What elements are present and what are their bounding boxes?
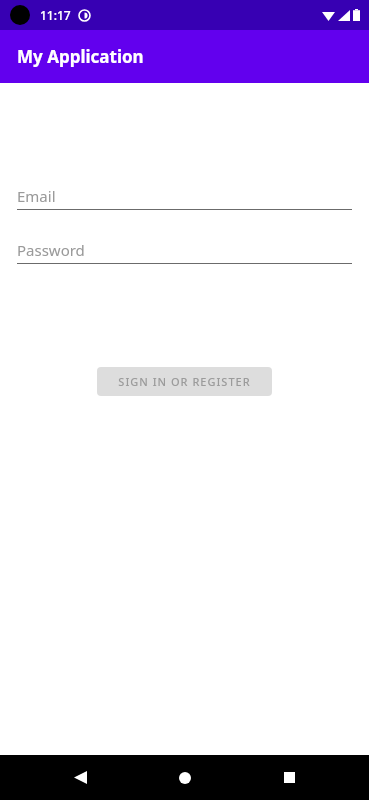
button[interactable]: SIGN IN OR REGISTER: [97, 367, 272, 396]
button[interactable]: Password: [17, 239, 352, 264]
button[interactable]: Email: [17, 185, 352, 210]
button[interactable]: Recent apps: [265, 755, 313, 800]
staticText: My Application: [17, 45, 144, 68]
button[interactable]: Home: [161, 755, 209, 800]
staticText: Password: [17, 240, 85, 260]
staticText: 11:17: [40, 7, 71, 23]
button[interactable]: Back: [56, 755, 104, 800]
staticText: SIGN IN OR REGISTER: [118, 374, 251, 389]
staticText: Email: [17, 186, 56, 206]
